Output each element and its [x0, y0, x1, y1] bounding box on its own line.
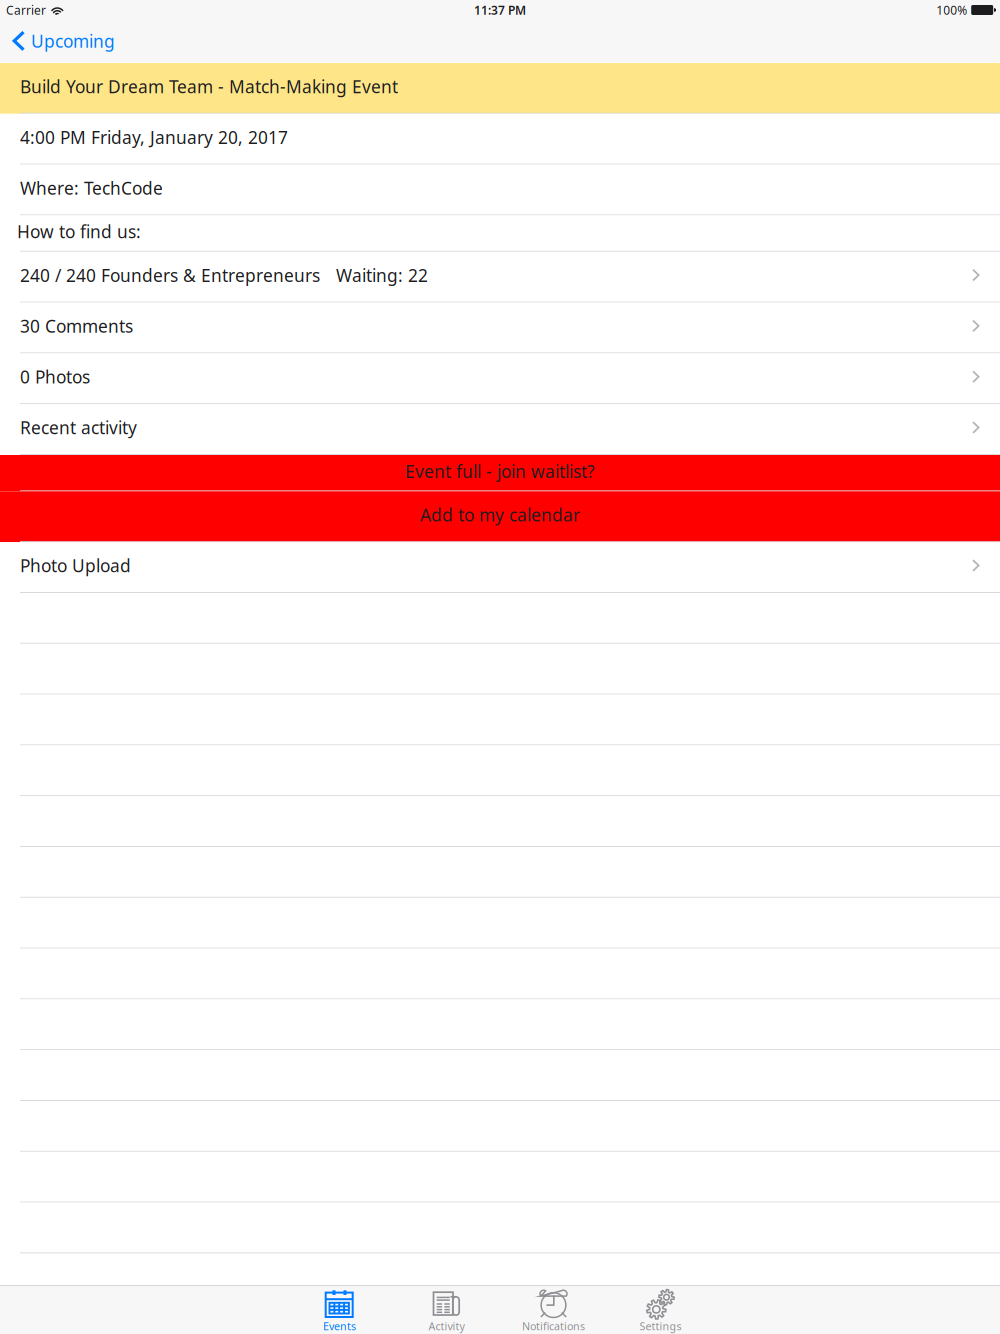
staticText: Build Your Dream Team - Match-Making Eve…	[20, 75, 398, 98]
button[interactable]: 0 Photos	[0, 353, 1000, 404]
staticText: 11:37 PM	[474, 2, 526, 18]
button[interactable]: Settings	[607, 1286, 714, 1334]
button[interactable]: Events	[286, 1286, 393, 1334]
button[interactable]: Recent activity	[0, 404, 1000, 455]
button[interactable]: Build Your Dream Team - Match-Making Eve…	[0, 63, 1000, 114]
button[interactable]: Upcoming	[0, 20, 125, 62]
button[interactable]: 4:00 PM Friday, January 20, 2017	[0, 114, 1000, 165]
button[interactable]: Activity	[393, 1286, 500, 1334]
button[interactable]: 30 Comments	[0, 303, 1000, 353]
button[interactable]: Notifications	[500, 1286, 607, 1334]
staticText: Notifications	[522, 1319, 585, 1333]
staticText: Carrier	[6, 2, 46, 18]
button[interactable]: Add to my calendar	[0, 491, 1000, 542]
button[interactable]: 240 / 240 Founders & Entrepreneurs	[0, 252, 1000, 303]
button[interactable]: Event full - join waitlist?	[0, 455, 1000, 491]
staticText: Event full - join waitlist?	[405, 460, 595, 483]
button[interactable]: Where: TechCode	[0, 165, 1000, 215]
staticText: 100%	[936, 2, 967, 18]
staticText: 0 Photos	[20, 365, 90, 388]
staticText: Waiting: 22	[336, 264, 428, 287]
button[interactable]: Photo Upload	[0, 542, 1000, 593]
staticText: How to find us:	[17, 220, 141, 243]
button[interactable]: How to find us:	[0, 215, 1000, 252]
staticText: Events	[323, 1319, 356, 1333]
staticText: Upcoming	[31, 29, 115, 52]
staticText: Where: TechCode	[20, 176, 163, 199]
staticText: Photo Upload	[20, 554, 131, 577]
staticText: Settings	[639, 1319, 681, 1333]
staticText: Add to my calendar	[420, 503, 580, 526]
staticText: Activity	[428, 1319, 464, 1333]
staticText: 4:00 PM Friday, January 20, 2017	[20, 126, 288, 149]
staticText: 240 / 240 Founders & Entrepreneurs	[20, 264, 320, 287]
staticText: Recent activity	[20, 416, 137, 439]
staticText: 30 Comments	[20, 314, 133, 337]
